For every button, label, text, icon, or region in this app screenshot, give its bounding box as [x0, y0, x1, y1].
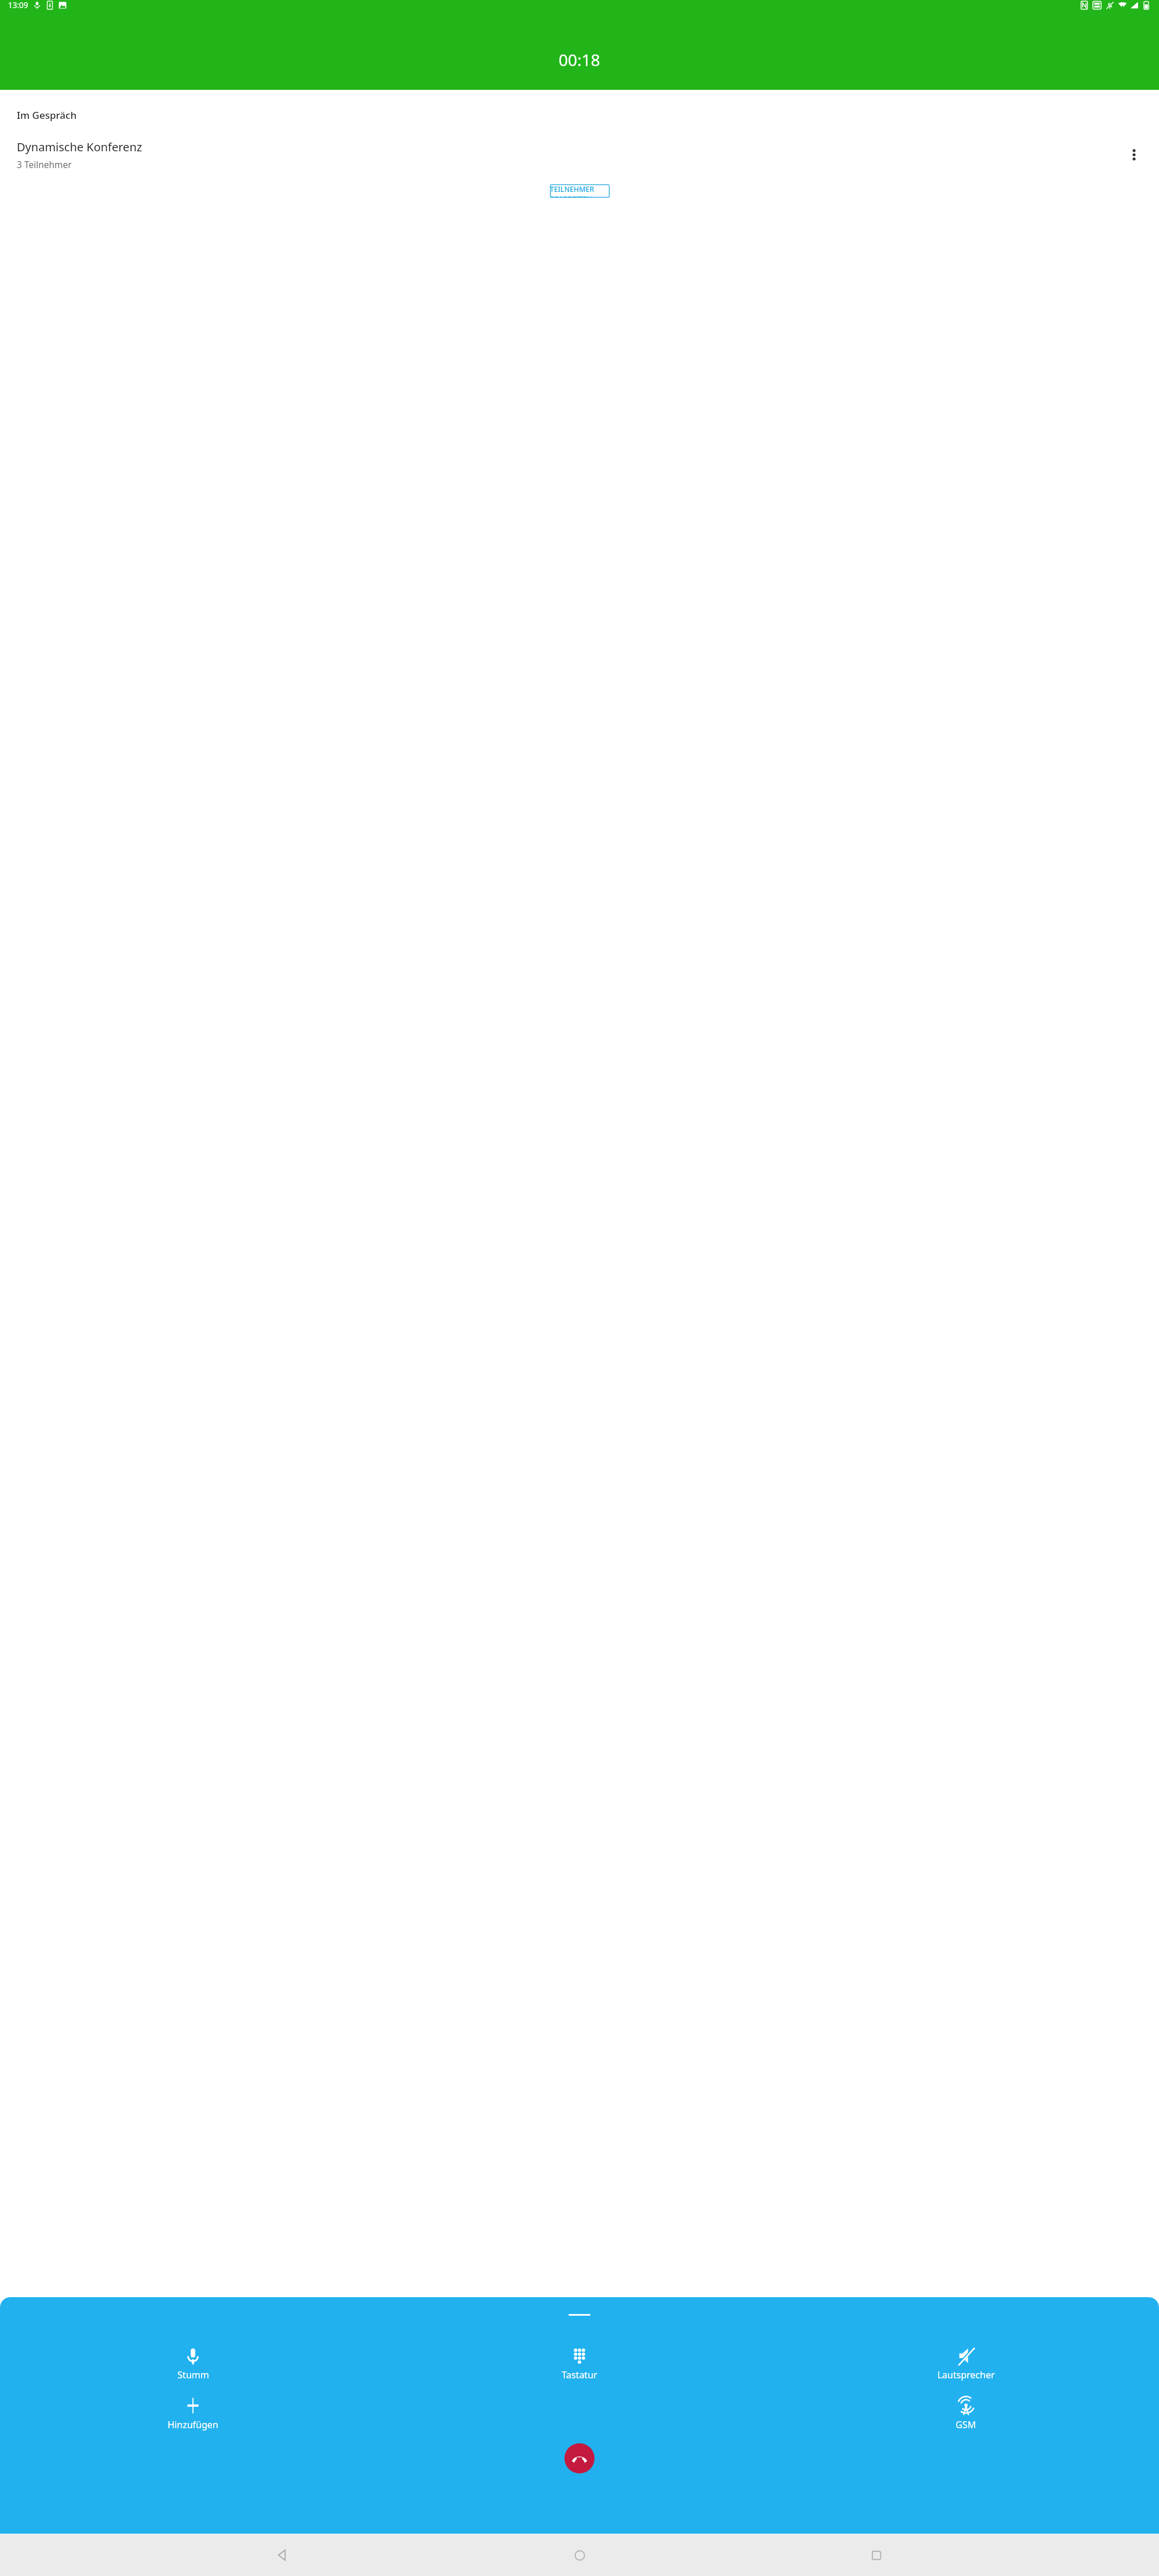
staticText: Hinzufügen — [167, 2418, 218, 2431]
button[interactable]: Anruf beenden — [564, 2443, 595, 2473]
button[interactable]: Hinzufügen — [0, 2393, 386, 2433]
button[interactable]: Übersicht — [862, 2541, 890, 2569]
staticText: Im Gespräch — [17, 108, 77, 122]
staticText: 3 Teilnehmer — [17, 158, 72, 170]
staticText: GSM — [956, 2418, 976, 2431]
staticText: 13:09 — [8, 0, 28, 10]
button[interactable]: Lautsprecher — [772, 2344, 1159, 2384]
button[interactable]: Startbildschirm — [566, 2541, 593, 2569]
staticText: Tastatur — [562, 2368, 597, 2381]
staticText: Dynamische Konferenz — [17, 139, 143, 155]
button[interactable]: Zurück — [269, 2541, 297, 2569]
button[interactable]: TEILNEHMER BEARBEITEN — [550, 184, 610, 198]
button[interactable]: Stumm — [0, 2344, 386, 2384]
button[interactable]: Weitere Optionen — [1122, 143, 1146, 167]
staticText: 00:18 — [559, 49, 600, 71]
staticText: TEILNEHMER BEARBEITEN — [550, 184, 610, 198]
staticText: Lautsprecher — [937, 2368, 995, 2381]
button[interactable]: Tastatur — [386, 2344, 772, 2384]
staticText: Stumm — [177, 2368, 209, 2381]
button[interactable]: GSM — [772, 2393, 1159, 2433]
